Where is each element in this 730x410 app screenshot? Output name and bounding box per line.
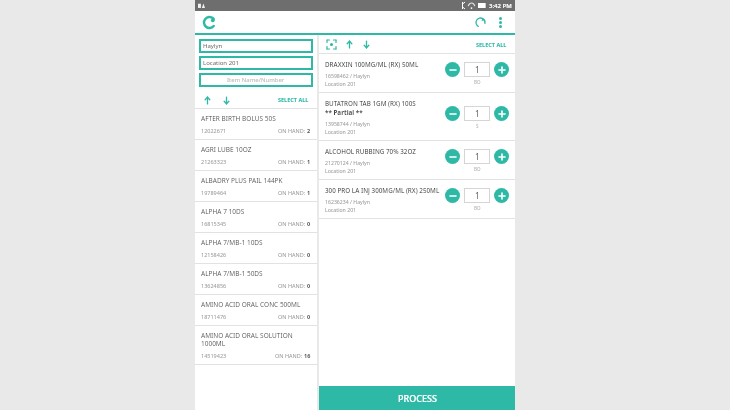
staticText: 12022671: [201, 127, 227, 134]
staticText: AMINO ACID ORAL SOLUTION 1000ML: [201, 331, 311, 348]
staticText: 1: [307, 189, 311, 196]
staticText: 13624856: [201, 282, 227, 289]
button[interactable]: 300 PRO LA INJ 300MG/ML (RX) 250ML: [319, 180, 515, 219]
staticText: 16598462 / Haylyn: [325, 72, 370, 79]
staticText: 1: [475, 64, 480, 75]
staticText: 1: [475, 108, 480, 119]
staticText: 16: [304, 352, 311, 359]
staticText: 0: [307, 313, 311, 320]
staticText: ON HAND:: [278, 313, 307, 320]
button[interactable]: Item Name/Number: [199, 73, 313, 87]
button[interactable]: Decrease quantity: [445, 188, 460, 203]
staticText: ** Partial **: [325, 108, 363, 117]
staticText: ALPHA 7/MB-1 50DS: [201, 269, 263, 278]
staticText: 12158426: [201, 251, 227, 258]
staticText: ON HAND:: [278, 282, 307, 289]
staticText: 14519423: [201, 352, 227, 359]
staticText: 0: [307, 282, 311, 289]
button[interactable]: More options: [492, 14, 508, 30]
button[interactable]: Haylyn: [199, 39, 313, 53]
staticText: Location 201: [203, 59, 239, 67]
button[interactable]: AGRI LUBE 10OZ: [195, 140, 317, 171]
staticText: AGRI LUBE 10OZ: [201, 145, 252, 154]
button[interactable]: Increase quantity: [494, 188, 509, 203]
staticText: 21270124 / Haylyn: [325, 159, 370, 166]
button[interactable]: ALBADRY PLUS PAIL 144PK: [195, 171, 317, 202]
staticText: 300 PRO LA INJ 300MG/ML (RX) 250ML: [325, 186, 440, 195]
staticText: 18711476: [201, 313, 227, 320]
staticText: BUTATRON TAB 1GM (RX) 100S: [325, 99, 416, 108]
staticText: BO: [474, 166, 481, 172]
staticText: ON HAND:: [278, 158, 307, 165]
staticText: Haylyn: [203, 42, 223, 50]
staticText: DRAXXIN 100MG/ML (RX) 50ML: [325, 60, 419, 69]
button[interactable]: Decrease quantity: [445, 149, 460, 164]
staticText: 1: [475, 151, 480, 162]
staticText: 2: [307, 127, 311, 134]
staticText: SELECT ALL: [278, 96, 309, 103]
staticText: 21263323: [201, 158, 227, 165]
button[interactable]: App logo: [202, 15, 216, 29]
staticText: PROCESS: [398, 392, 437, 404]
button[interactable]: ALCOHOL RUBBING 70% 32OZ: [319, 141, 515, 180]
staticText: AMINO ACID ORAL CONC 500ML: [201, 300, 301, 309]
staticText: Location 201: [325, 80, 357, 87]
staticText: ALPHA 7/MB-1 10DS: [201, 238, 263, 247]
staticText: 3:42 PM: [489, 2, 512, 10]
button[interactable]: DRAXXIN 100MG/ML (RX) 50ML: [319, 54, 515, 93]
button[interactable]: ALPHA 7/MB-1 10DS: [195, 233, 317, 264]
staticText: ON HAND:: [278, 189, 307, 196]
staticText: SELECT ALL: [476, 41, 507, 48]
button[interactable]: AMINO ACID ORAL SOLUTION 1000ML: [195, 326, 317, 365]
button[interactable]: ALPHA 7 10DS: [195, 202, 317, 233]
staticText: 0: [307, 220, 311, 227]
button[interactable]: ALPHA 7/MB-1 50DS: [195, 264, 317, 295]
button[interactable]: Decrease quantity: [445, 62, 460, 77]
button[interactable]: Scan barcode: [325, 38, 338, 51]
staticText: 16236234 / Haylyn: [325, 198, 370, 205]
staticText: ALPHA 7 10DS: [201, 207, 245, 216]
staticText: AFTER BIRTH BOLUS 50S: [201, 114, 276, 123]
staticText: BO: [474, 79, 481, 85]
staticText: ON HAND:: [278, 127, 307, 134]
staticText: ON HAND:: [278, 251, 307, 258]
button[interactable]: Increase quantity: [494, 62, 509, 77]
button[interactable]: AFTER BIRTH BOLUS 50S: [195, 109, 317, 140]
button[interactable]: Decrease quantity: [445, 106, 460, 121]
button[interactable]: Increase quantity: [494, 106, 509, 121]
button[interactable]: SELECT ALL: [276, 94, 311, 105]
staticText: 1: [475, 190, 480, 201]
button[interactable]: BUTATRON TAB 1GM (RX) 100S: [319, 93, 515, 141]
button[interactable]: Increase quantity: [494, 149, 509, 164]
staticText: Item Name/Number: [227, 76, 285, 84]
staticText: Location 201: [325, 128, 357, 135]
button[interactable]: Sort ascending: [343, 38, 355, 50]
staticText: S: [476, 123, 479, 129]
button[interactable]: Sort descending: [220, 94, 232, 106]
staticText: ON HAND:: [275, 352, 304, 359]
staticText: Location 201: [325, 206, 357, 213]
staticText: 19789464: [201, 189, 227, 196]
staticText: BO: [474, 205, 481, 211]
staticText: ALBADRY PLUS PAIL 144PK: [201, 176, 283, 185]
button[interactable]: Refresh: [472, 14, 488, 30]
staticText: Location 201: [325, 167, 357, 174]
staticText: 13958744 / Haylyn: [325, 120, 370, 127]
staticText: ON HAND:: [278, 220, 307, 227]
button[interactable]: AMINO ACID ORAL CONC 500ML: [195, 295, 317, 326]
button[interactable]: SELECT ALL: [474, 39, 509, 50]
staticText: ALCOHOL RUBBING 70% 32OZ: [325, 147, 416, 156]
staticText: 16815345: [201, 220, 227, 227]
button[interactable]: PROCESS: [319, 386, 515, 410]
staticText: 0: [307, 251, 311, 258]
button[interactable]: Location 201: [199, 56, 313, 70]
button[interactable]: Sort descending: [360, 38, 372, 50]
button[interactable]: Sort ascending: [201, 94, 213, 106]
staticText: 1: [307, 158, 311, 165]
